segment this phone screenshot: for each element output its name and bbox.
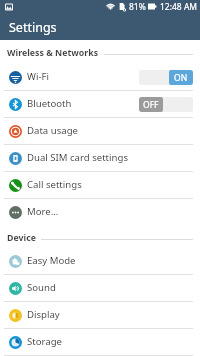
staticText: ON — [174, 72, 188, 84]
button[interactable]: ON — [139, 70, 193, 85]
button[interactable]: Dual SIM card settings — [0, 145, 200, 172]
staticText: Bluetooth — [27, 97, 72, 110]
staticText: 81% — [129, 1, 146, 13]
staticText: Device — [7, 232, 36, 244]
staticText: Display — [27, 308, 60, 321]
button[interactable]: Call settings — [0, 172, 200, 199]
button[interactable]: Sound — [0, 275, 200, 302]
staticText: Sound — [27, 281, 56, 294]
button[interactable]: Display — [0, 302, 200, 329]
staticText: Wi-Fi — [27, 70, 49, 83]
button[interactable]: Data usage — [0, 118, 200, 145]
staticText: Storage — [27, 335, 62, 348]
staticText: Easy Mode — [27, 254, 76, 267]
staticText: Call settings — [27, 178, 82, 191]
staticText: OFF — [143, 99, 159, 111]
button[interactable]: OFF — [139, 97, 193, 112]
button[interactable]: Bluetooth — [0, 91, 200, 118]
staticText: 12:48 AM — [160, 1, 198, 13]
button[interactable]: Easy Mode — [0, 248, 200, 275]
staticText: Dual SIM card settings — [27, 151, 128, 164]
button[interactable]: Wi-Fi — [0, 64, 200, 91]
staticText: Wireless & Networks — [7, 47, 99, 59]
staticText: Settings — [9, 19, 57, 36]
button[interactable]: More... — [0, 199, 200, 226]
staticText: Data usage — [27, 124, 78, 137]
button[interactable]: Storage — [0, 329, 200, 356]
staticText: More... — [27, 205, 59, 218]
